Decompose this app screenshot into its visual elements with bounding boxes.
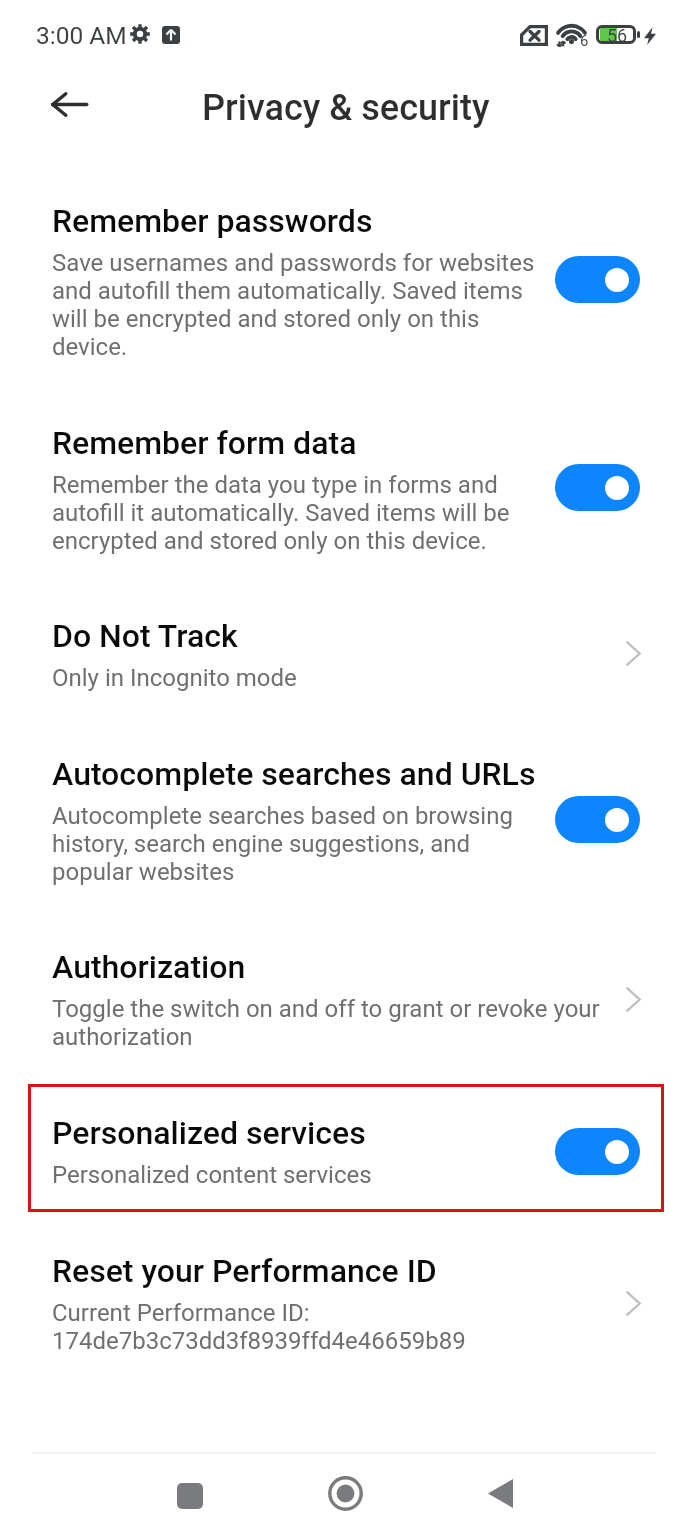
button[interactable]: Toggle switch — [555, 256, 640, 303]
button[interactable] — [0, 1090, 691, 1206]
button[interactable]: Recent apps — [155, 1461, 224, 1530]
staticText: Personalized services — [52, 1114, 366, 1152]
staticText: 6 — [580, 32, 589, 50]
button[interactable] — [0, 738, 691, 888]
button[interactable]: Back — [466, 1459, 535, 1528]
staticText: Autocomplete searches based on browsing … — [52, 802, 513, 886]
button[interactable]: Home — [311, 1459, 380, 1528]
button[interactable] — [0, 405, 691, 573]
button[interactable]: Toggle switch — [555, 1128, 640, 1175]
staticText: 3:00 AM — [36, 21, 127, 50]
staticText: Do Not Track — [52, 617, 238, 655]
button[interactable]: Open — [605, 625, 661, 681]
button[interactable]: Open — [605, 971, 661, 1027]
staticText: Authorization — [52, 948, 246, 986]
staticText: 56 — [607, 25, 628, 46]
button[interactable] — [0, 600, 691, 710]
button[interactable]: Toggle switch — [555, 464, 640, 511]
staticText: Remember form data — [52, 424, 357, 462]
button[interactable] — [0, 930, 691, 1056]
staticText: Autocomplete searches and URLs — [52, 755, 536, 793]
staticText: Remember the data you type in forms and … — [52, 471, 510, 555]
staticText: Personalized content services — [52, 1161, 372, 1189]
staticText: Save usernames and passwords for website… — [52, 249, 535, 361]
button[interactable]: Toggle switch — [555, 796, 640, 843]
staticText: Current Performance ID: 174de7b3c73dd3f8… — [52, 1299, 466, 1355]
staticText: Privacy & security — [202, 87, 490, 129]
staticText: Remember passwords — [52, 202, 373, 240]
staticText: Toggle the switch on and off to grant or… — [52, 995, 600, 1051]
button[interactable] — [0, 185, 691, 380]
button[interactable]: Open — [605, 1275, 661, 1331]
staticText: Only in Incognito mode — [52, 664, 297, 692]
button[interactable] — [0, 1232, 691, 1362]
staticText: Reset your Performance ID — [52, 1252, 437, 1290]
button[interactable]: Back — [39, 74, 99, 134]
